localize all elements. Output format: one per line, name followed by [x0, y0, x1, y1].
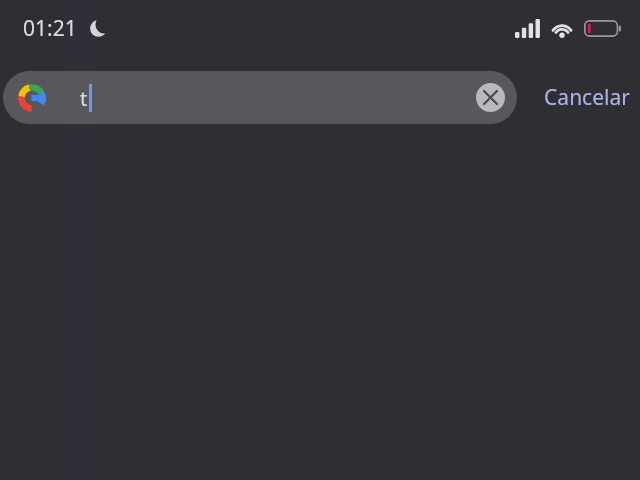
button[interactable]: t — [3, 71, 517, 124]
staticText: Cancelar — [544, 83, 630, 112]
staticText: 01:21 — [23, 14, 77, 43]
button[interactable]: Cancelar — [544, 71, 630, 124]
staticText: t — [80, 85, 88, 112]
button[interactable]: Limpar pesquisa — [476, 83, 505, 112]
